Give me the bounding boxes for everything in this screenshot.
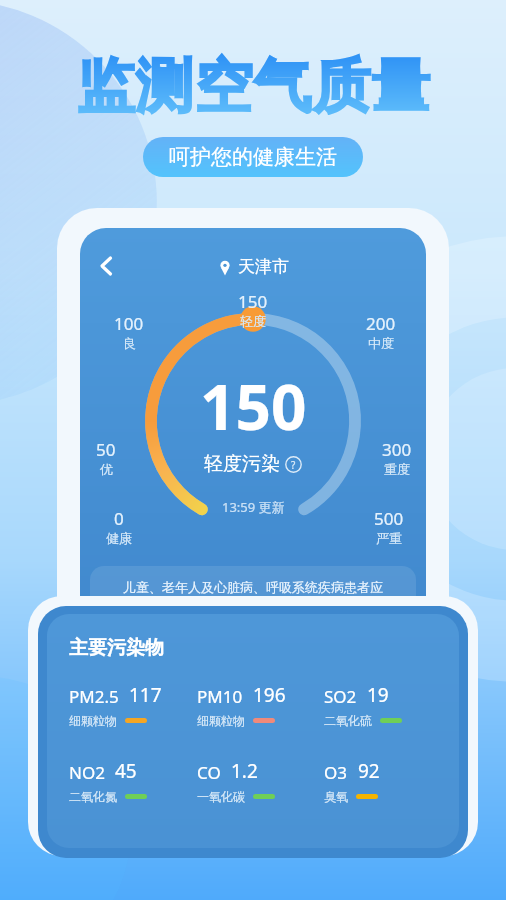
staticText: CO xyxy=(197,761,221,784)
staticText: PM10 xyxy=(197,685,243,708)
staticText: 1.2 xyxy=(231,758,258,784)
staticText: 19 xyxy=(367,682,389,708)
staticText: 中度 xyxy=(368,335,394,351)
staticText: 13:59 更新 xyxy=(222,498,285,516)
button[interactable]: Back xyxy=(88,248,124,284)
staticText: 二氧化硫 xyxy=(324,713,372,728)
button[interactable]: 呵护您的健康生活 xyxy=(143,137,363,177)
staticText: 细颗粒物 xyxy=(69,713,117,728)
staticText: 117 xyxy=(129,682,162,708)
button[interactable]: 天津市 xyxy=(218,256,289,277)
staticText: 0 xyxy=(114,507,124,530)
staticText: 健康 xyxy=(106,530,132,546)
button[interactable]: NO2 xyxy=(69,758,197,804)
staticText: 50 xyxy=(96,438,116,461)
staticText: 儿童、老年人及心脏病、呼吸系统疾病患者应 xyxy=(123,579,383,595)
staticText: NO2 xyxy=(69,761,105,784)
staticText: O3 xyxy=(324,761,348,784)
staticText: 重度 xyxy=(384,461,410,477)
button[interactable]: Info xyxy=(285,456,302,473)
button[interactable]: PM2.5 xyxy=(69,682,197,728)
button[interactable]: SO2 xyxy=(324,682,441,728)
staticText: 主要污染物 xyxy=(69,636,164,660)
staticText: 150 xyxy=(238,290,268,313)
staticText: 二氧化氮 xyxy=(69,789,117,804)
staticText: 细颗粒物 xyxy=(197,713,245,728)
staticText: 呵护您的健康生活 xyxy=(169,144,337,170)
staticText: 严重 xyxy=(376,530,402,546)
staticText: PM2.5 xyxy=(69,685,119,708)
staticText: 300 xyxy=(382,438,412,461)
staticText: 轻度 xyxy=(240,313,266,329)
staticText: SO2 xyxy=(324,685,357,708)
staticText: 45 xyxy=(115,758,137,784)
staticText: ? xyxy=(291,458,296,472)
button[interactable]: O3 xyxy=(324,758,441,804)
staticText: 轻度污染 xyxy=(204,452,280,476)
staticText: 500 xyxy=(374,507,404,530)
button[interactable]: 主要污染物 xyxy=(47,614,459,848)
button[interactable]: PM10 xyxy=(197,682,324,728)
staticText: 监测空气质量 xyxy=(76,50,430,123)
staticText: 92 xyxy=(358,758,380,784)
staticText: 100 xyxy=(114,312,144,335)
button[interactable]: 儿童、老年人及心脏病、呼吸系统疾病患者应 xyxy=(90,566,416,608)
staticText: 天津市 xyxy=(238,256,289,277)
staticText: 200 xyxy=(366,312,396,335)
staticText: 良 xyxy=(123,335,136,351)
staticText: 一氧化碳 xyxy=(197,789,245,804)
button[interactable]: CO xyxy=(197,758,324,804)
staticText: 196 xyxy=(253,682,286,708)
staticText: 150 xyxy=(200,364,307,448)
staticText: 臭氧 xyxy=(324,789,348,804)
staticText: 优 xyxy=(100,461,113,477)
